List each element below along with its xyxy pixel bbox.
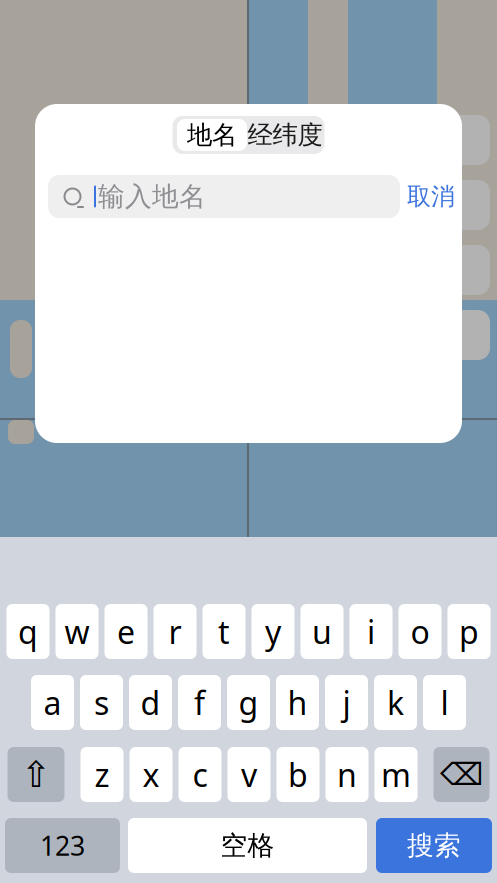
staticText: y [265, 610, 281, 653]
button[interactable]: u [300, 604, 343, 659]
staticText: w [64, 610, 89, 653]
button[interactable]: m [374, 747, 417, 802]
staticText: ⌫ [440, 757, 483, 792]
button[interactable]: g [227, 675, 270, 730]
staticText: 输入地名 [98, 180, 206, 213]
button[interactable]: y [251, 604, 294, 659]
button[interactable]: 123 [5, 818, 120, 873]
button[interactable]: w [55, 604, 98, 659]
button[interactable]: 地名 [177, 119, 247, 151]
button[interactable]: h [276, 675, 319, 730]
staticText: f [194, 681, 205, 724]
staticText: k [387, 681, 404, 724]
staticText: m [381, 753, 411, 796]
button[interactable]: 搜索 [376, 818, 492, 873]
staticText: z [94, 753, 109, 796]
staticText: d [140, 681, 160, 724]
button[interactable]: n [325, 747, 368, 802]
button[interactable]: t [202, 604, 245, 659]
staticText: i [367, 610, 375, 653]
staticText: ⇧ [21, 754, 51, 795]
staticText: h [287, 681, 307, 724]
button[interactable]: r [153, 604, 196, 659]
staticText: u [312, 610, 332, 653]
button[interactable]: e [104, 604, 147, 659]
staticText: v [241, 753, 257, 796]
staticText: 经纬度 [247, 119, 322, 150]
button[interactable]: s [80, 675, 123, 730]
staticText: 搜索 [407, 829, 461, 862]
staticText: t [218, 610, 230, 653]
button[interactable]: b [276, 747, 319, 802]
button[interactable]: j [325, 675, 368, 730]
staticText: e [117, 610, 135, 653]
staticText: b [288, 753, 308, 796]
button[interactable]: l [423, 675, 466, 730]
staticText: g [238, 681, 258, 724]
staticText: o [410, 610, 429, 653]
staticText: 空格 [220, 829, 274, 862]
staticText: 123 [40, 828, 85, 863]
button[interactable]: z [80, 747, 123, 802]
button[interactable]: Measure [436, 115, 490, 165]
button[interactable]: p [447, 604, 490, 659]
button[interactable]: 经纬度 [247, 117, 323, 153]
staticText: n [337, 753, 357, 796]
button[interactable]: a [31, 675, 74, 730]
button[interactable]: Shift [7, 747, 64, 802]
button[interactable]: f [178, 675, 221, 730]
staticText: l [440, 681, 448, 724]
staticText: r [168, 610, 181, 653]
button[interactable]: c [178, 747, 221, 802]
staticText: 地名 [187, 119, 237, 150]
button[interactable]: 取消 [400, 175, 462, 218]
button[interactable]: Layers [436, 310, 490, 360]
button[interactable]: o [398, 604, 441, 659]
button[interactable]: k [374, 675, 417, 730]
button[interactable]: v [227, 747, 270, 802]
staticText: j [342, 681, 350, 724]
staticText: s [94, 681, 109, 724]
staticText: a [43, 681, 61, 724]
staticText: q [18, 610, 38, 653]
button[interactable]: x [129, 747, 172, 802]
button[interactable]: Compass [436, 245, 490, 295]
staticText: 取消 [407, 182, 455, 211]
button[interactable]: i [349, 604, 392, 659]
button[interactable]: 空格 [128, 818, 367, 873]
staticText: x [142, 753, 159, 796]
staticText: p [459, 610, 479, 653]
button[interactable]: d [129, 675, 172, 730]
staticText: c [192, 753, 207, 796]
button[interactable]: Delete [433, 747, 489, 802]
button[interactable]: q [6, 604, 49, 659]
button[interactable]: Search map [436, 180, 490, 230]
